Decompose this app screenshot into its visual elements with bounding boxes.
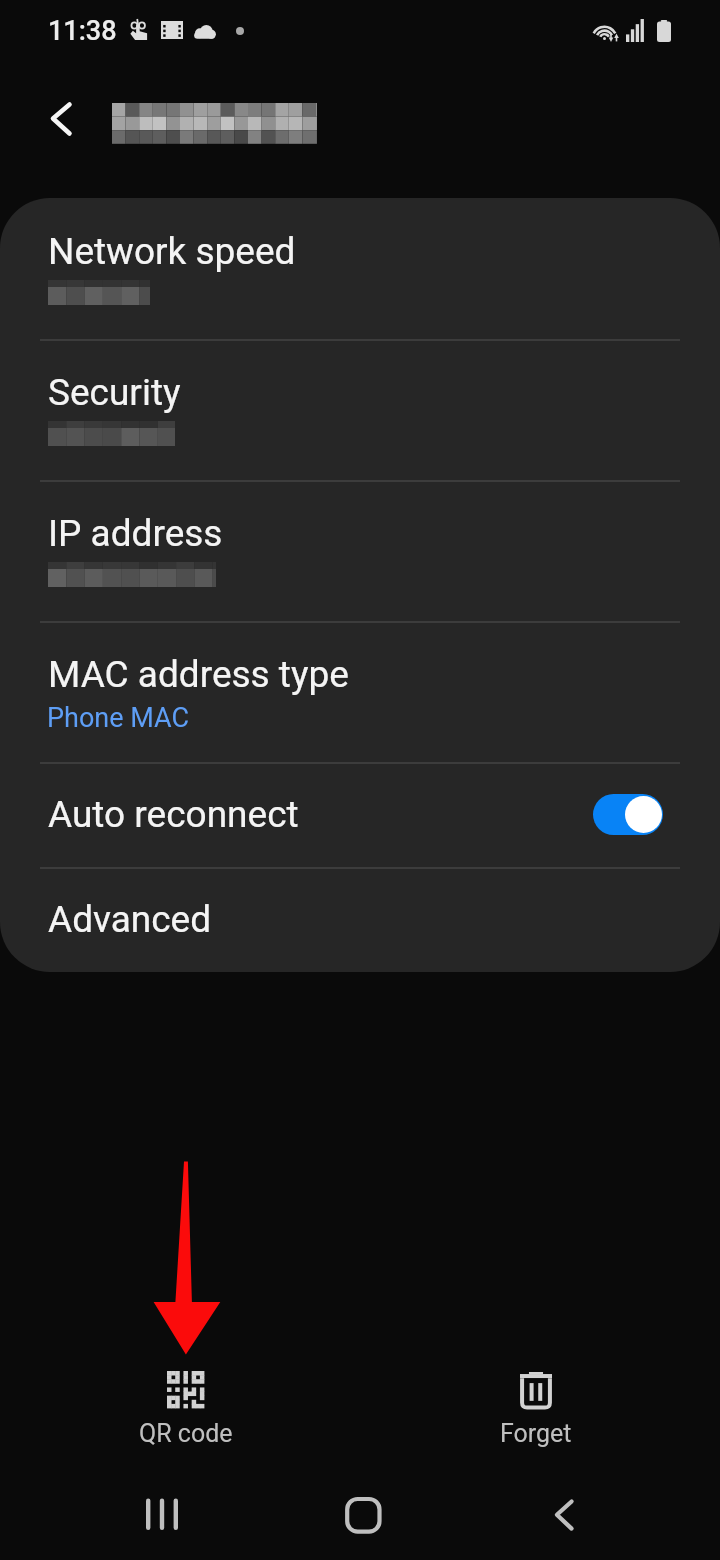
button[interactable]: QR code <box>105 1360 266 1460</box>
button[interactable]: Recent apps <box>130 1484 190 1544</box>
button[interactable]: Forget <box>455 1360 616 1460</box>
staticText: Security <box>48 371 181 414</box>
staticText: IP address <box>48 512 223 555</box>
button[interactable]: Advanced <box>0 867 720 972</box>
staticText: 11:38 <box>48 15 117 47</box>
button[interactable]: Network speed <box>0 198 720 339</box>
button[interactable]: Security <box>0 339 720 480</box>
staticText: Auto reconnect <box>48 793 299 836</box>
staticText: Network speed <box>48 230 296 273</box>
button[interactable]: Home <box>332 1484 392 1544</box>
staticText: Forget <box>500 1419 572 1448</box>
button[interactable]: Navigate up <box>26 88 88 150</box>
staticText: Advanced <box>48 898 212 941</box>
button[interactable]: Auto reconnect <box>0 762 720 867</box>
button[interactable]: MAC address type <box>0 621 720 762</box>
other: Pointer <box>0 0 720 1560</box>
button[interactable]: Back <box>532 1484 592 1544</box>
staticText: MAC address type <box>48 653 349 696</box>
staticText: Phone MAC <box>47 702 190 734</box>
staticText: QR code <box>139 1419 233 1448</box>
button[interactable]: IP address <box>0 480 720 621</box>
